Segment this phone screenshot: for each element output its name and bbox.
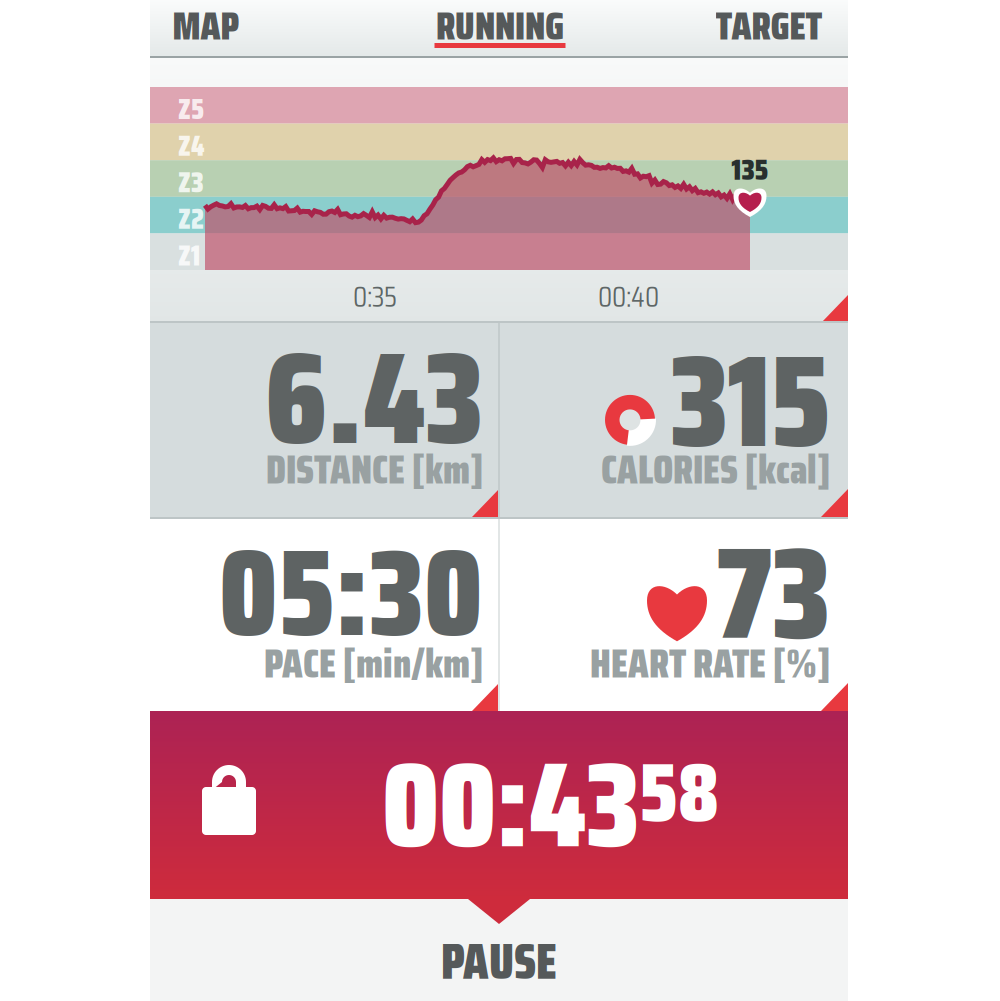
staticText: TARGET bbox=[715, 0, 822, 56]
staticText: 05:30 bbox=[219, 497, 483, 688]
staticText: 315 bbox=[670, 299, 830, 503]
staticText: Z2 bbox=[178, 197, 204, 241]
staticText: PACE [min/km] bbox=[264, 632, 483, 695]
staticText: 73 bbox=[716, 491, 830, 695]
staticText: 00:40 bbox=[598, 273, 659, 320]
staticText: HEART RATE [%] bbox=[590, 632, 830, 695]
staticText: 58 bbox=[639, 727, 719, 857]
staticText: PAUSE bbox=[441, 923, 557, 1000]
staticText: DISTANCE [km] bbox=[266, 438, 483, 501]
button[interactable]: PAUSE bbox=[150, 899, 848, 1001]
staticText: Z3 bbox=[178, 160, 204, 205]
staticText: 6.43 bbox=[265, 296, 483, 500]
staticText: Z5 bbox=[178, 87, 204, 131]
staticText: Z4 bbox=[178, 124, 204, 168]
staticText: 0:35 bbox=[353, 273, 397, 320]
button[interactable]: RUNNING bbox=[430, 0, 570, 58]
staticText: RUNNING bbox=[436, 0, 564, 56]
staticText: MAP bbox=[172, 0, 239, 56]
staticText: 00:43 bbox=[382, 712, 639, 898]
staticText: 135 bbox=[731, 146, 768, 193]
staticText: CALORIES [kcal] bbox=[601, 438, 830, 501]
button[interactable]: TARGET bbox=[699, 0, 839, 58]
button[interactable]: MAP bbox=[156, 0, 256, 58]
button[interactable]: Lock screen bbox=[150, 711, 256, 835]
staticText: Z1 bbox=[178, 234, 200, 278]
